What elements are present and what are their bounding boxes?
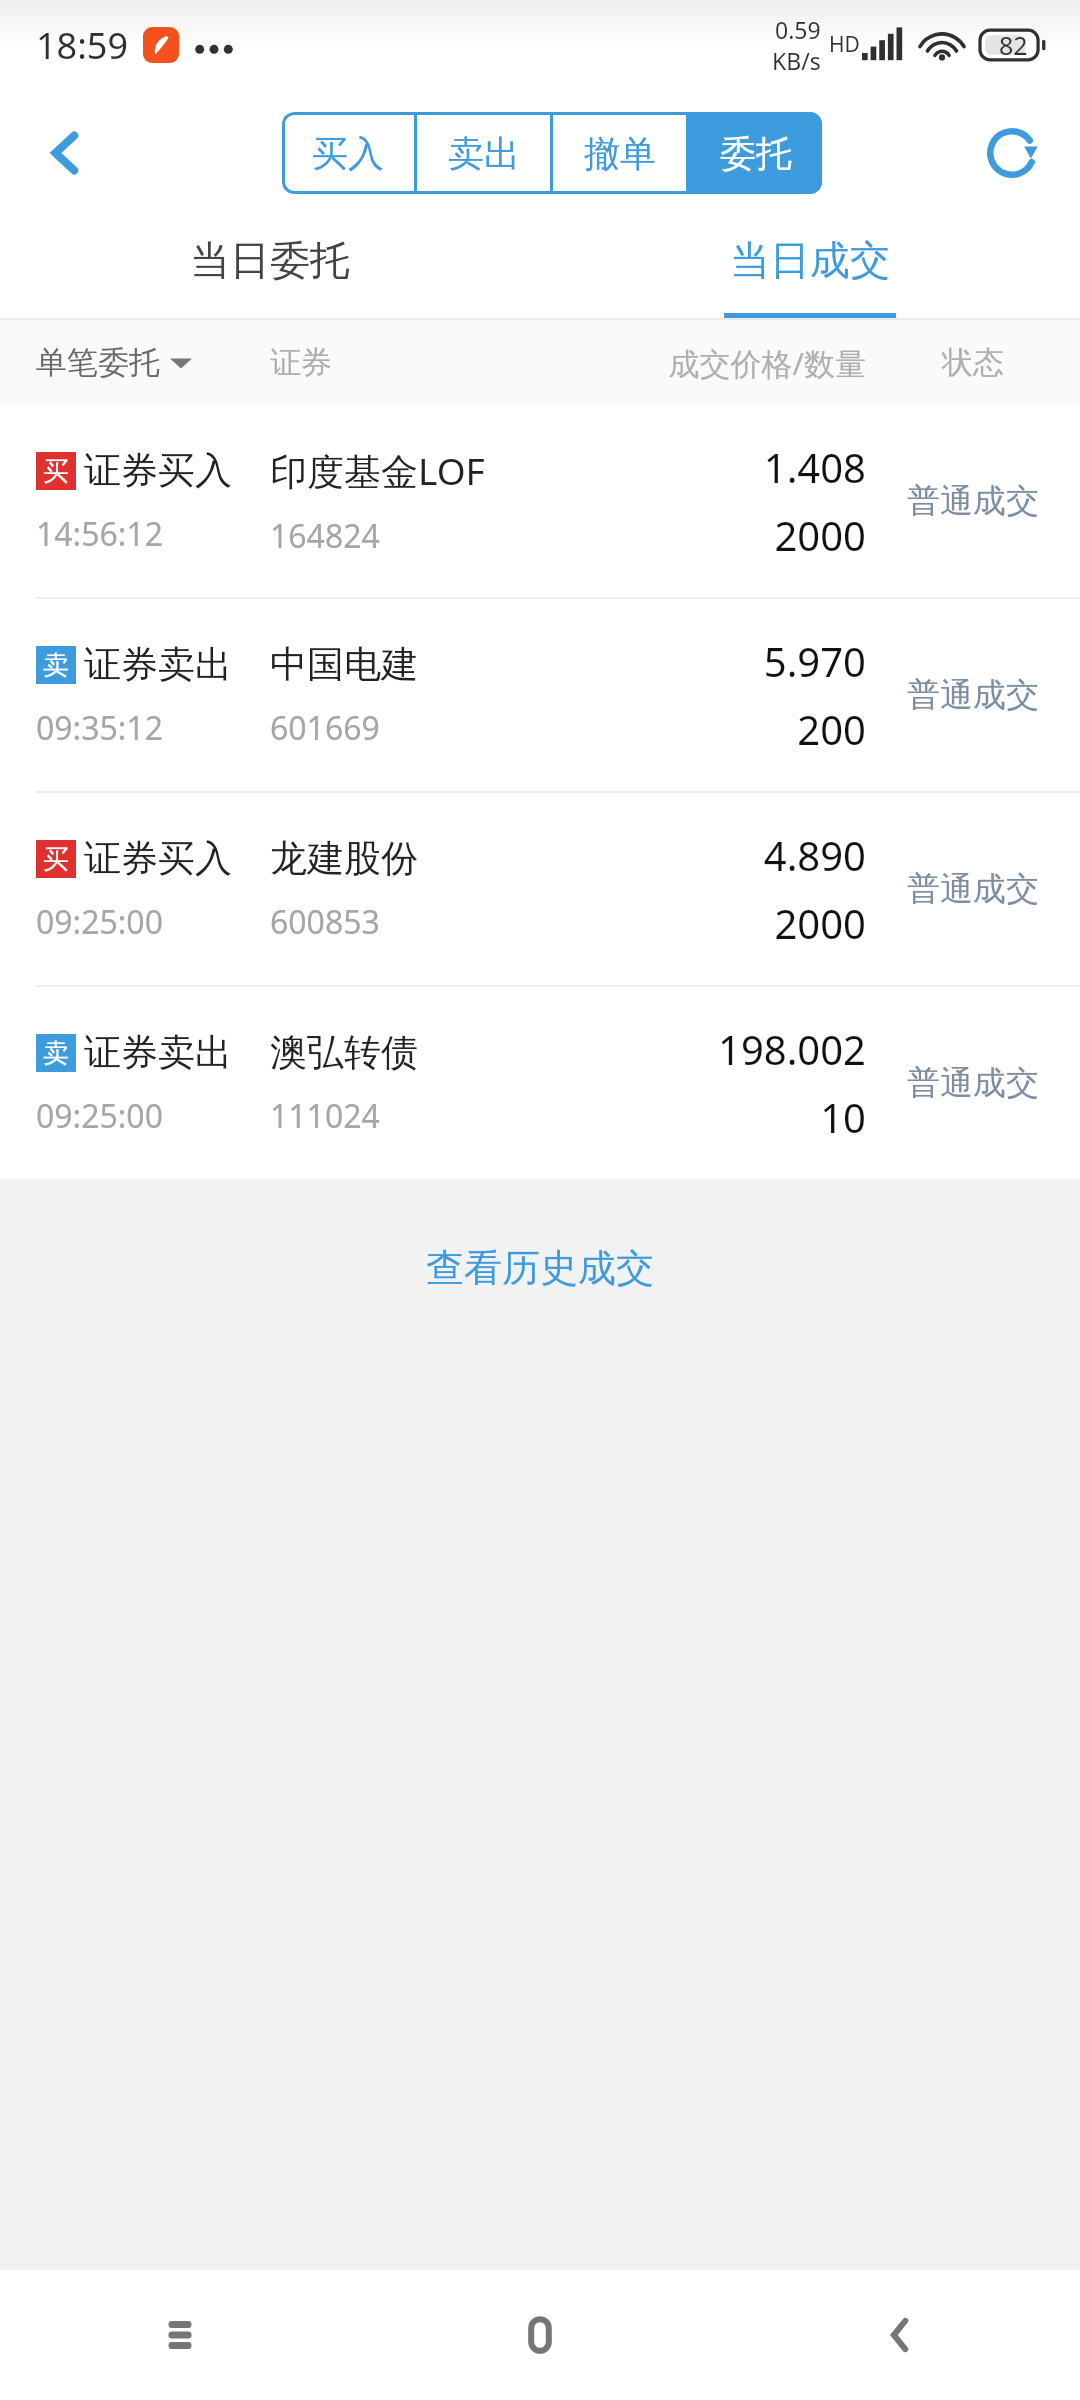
button[interactable]: 单笔委托	[36, 343, 270, 382]
staticText: 澳弘转债	[270, 1029, 418, 1076]
staticText: 198.002	[718, 1022, 866, 1076]
button[interactable]: 买入	[282, 112, 414, 194]
staticText: 09:25:00	[36, 1094, 163, 1138]
button[interactable]: 返回	[18, 105, 114, 201]
staticText: 4.890	[763, 828, 866, 882]
staticText: 200	[797, 702, 866, 756]
staticText: 撤单	[584, 131, 656, 176]
staticText: 卖出	[448, 131, 520, 176]
button[interactable]: 买	[0, 405, 1080, 597]
button[interactable]: 当日成交	[540, 215, 1080, 320]
staticText: 买入	[312, 131, 384, 176]
staticText: 单笔委托	[36, 343, 160, 382]
button[interactable]: 当日委托	[0, 215, 540, 320]
staticText: 5.970	[763, 634, 866, 688]
staticText: 10	[820, 1090, 866, 1144]
staticText: 普通成交	[907, 1062, 1039, 1104]
staticText: 龙建股份	[270, 835, 418, 882]
staticText: 2000	[774, 508, 866, 562]
button[interactable]: 卖出	[417, 112, 550, 194]
staticText: 证券买入	[84, 835, 232, 882]
button[interactable]: 撤单	[553, 112, 686, 194]
staticText: 当日成交	[730, 235, 890, 285]
staticText: 卖	[43, 1037, 69, 1070]
staticText: 委托	[720, 131, 792, 176]
staticText: 164824	[270, 514, 380, 558]
button[interactable]: 返回	[720, 2270, 1080, 2400]
staticText: 普通成交	[907, 674, 1039, 716]
staticText: 成交价格/数量	[470, 342, 866, 384]
staticText: 印度基金LOF	[270, 445, 485, 496]
staticText: 111024	[270, 1094, 380, 1138]
staticText: HD	[829, 30, 860, 59]
staticText: 600853	[270, 900, 380, 944]
button[interactable]: 卖	[0, 599, 1080, 791]
staticText: 证券卖出	[84, 641, 232, 688]
staticText: 证券	[270, 343, 470, 382]
staticText: 601669	[270, 706, 380, 750]
button[interactable]: 委托	[689, 112, 822, 194]
staticText: 查看历史成交	[426, 1244, 654, 1292]
staticText: 买	[43, 843, 69, 876]
staticText: 状态	[892, 343, 1054, 382]
staticText: 证券卖出	[84, 1029, 232, 1076]
staticText: 0.59	[775, 14, 821, 45]
button[interactable]: 卖	[0, 987, 1080, 1179]
staticText: 82	[999, 28, 1028, 62]
staticText: 14:56:12	[36, 512, 163, 556]
staticText: 当日委托	[190, 235, 350, 285]
staticText: KB/s	[772, 45, 821, 76]
staticText: 中国电建	[270, 641, 418, 688]
staticText: 买	[43, 455, 69, 488]
button[interactable]: 主页	[360, 2270, 720, 2400]
staticText: 09:35:12	[36, 706, 163, 750]
button[interactable]: 最近任务	[0, 2270, 360, 2400]
staticText: 卖	[43, 649, 69, 682]
button[interactable]: 买	[0, 793, 1080, 985]
staticText: 普通成交	[907, 480, 1039, 522]
button[interactable]: 查看历史成交	[0, 1193, 1080, 1343]
button[interactable]: 刷新	[964, 105, 1060, 201]
staticText: 18:59	[36, 21, 129, 70]
staticText: 09:25:00	[36, 900, 163, 944]
staticText: 1.408	[763, 440, 866, 494]
staticText: 证券买入	[84, 447, 232, 494]
staticText: 普通成交	[907, 868, 1039, 910]
staticText: 2000	[774, 896, 866, 950]
